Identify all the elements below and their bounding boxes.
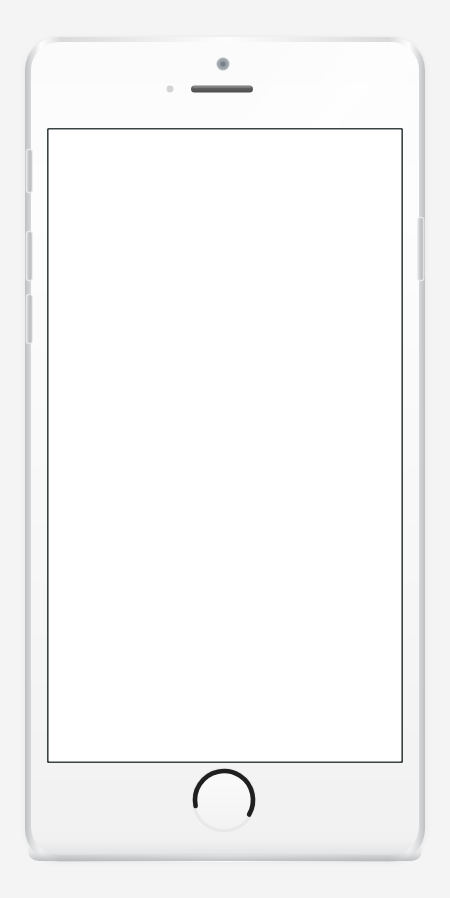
button[interactable]: White smartphone mockup with blank scree… xyxy=(0,0,450,898)
